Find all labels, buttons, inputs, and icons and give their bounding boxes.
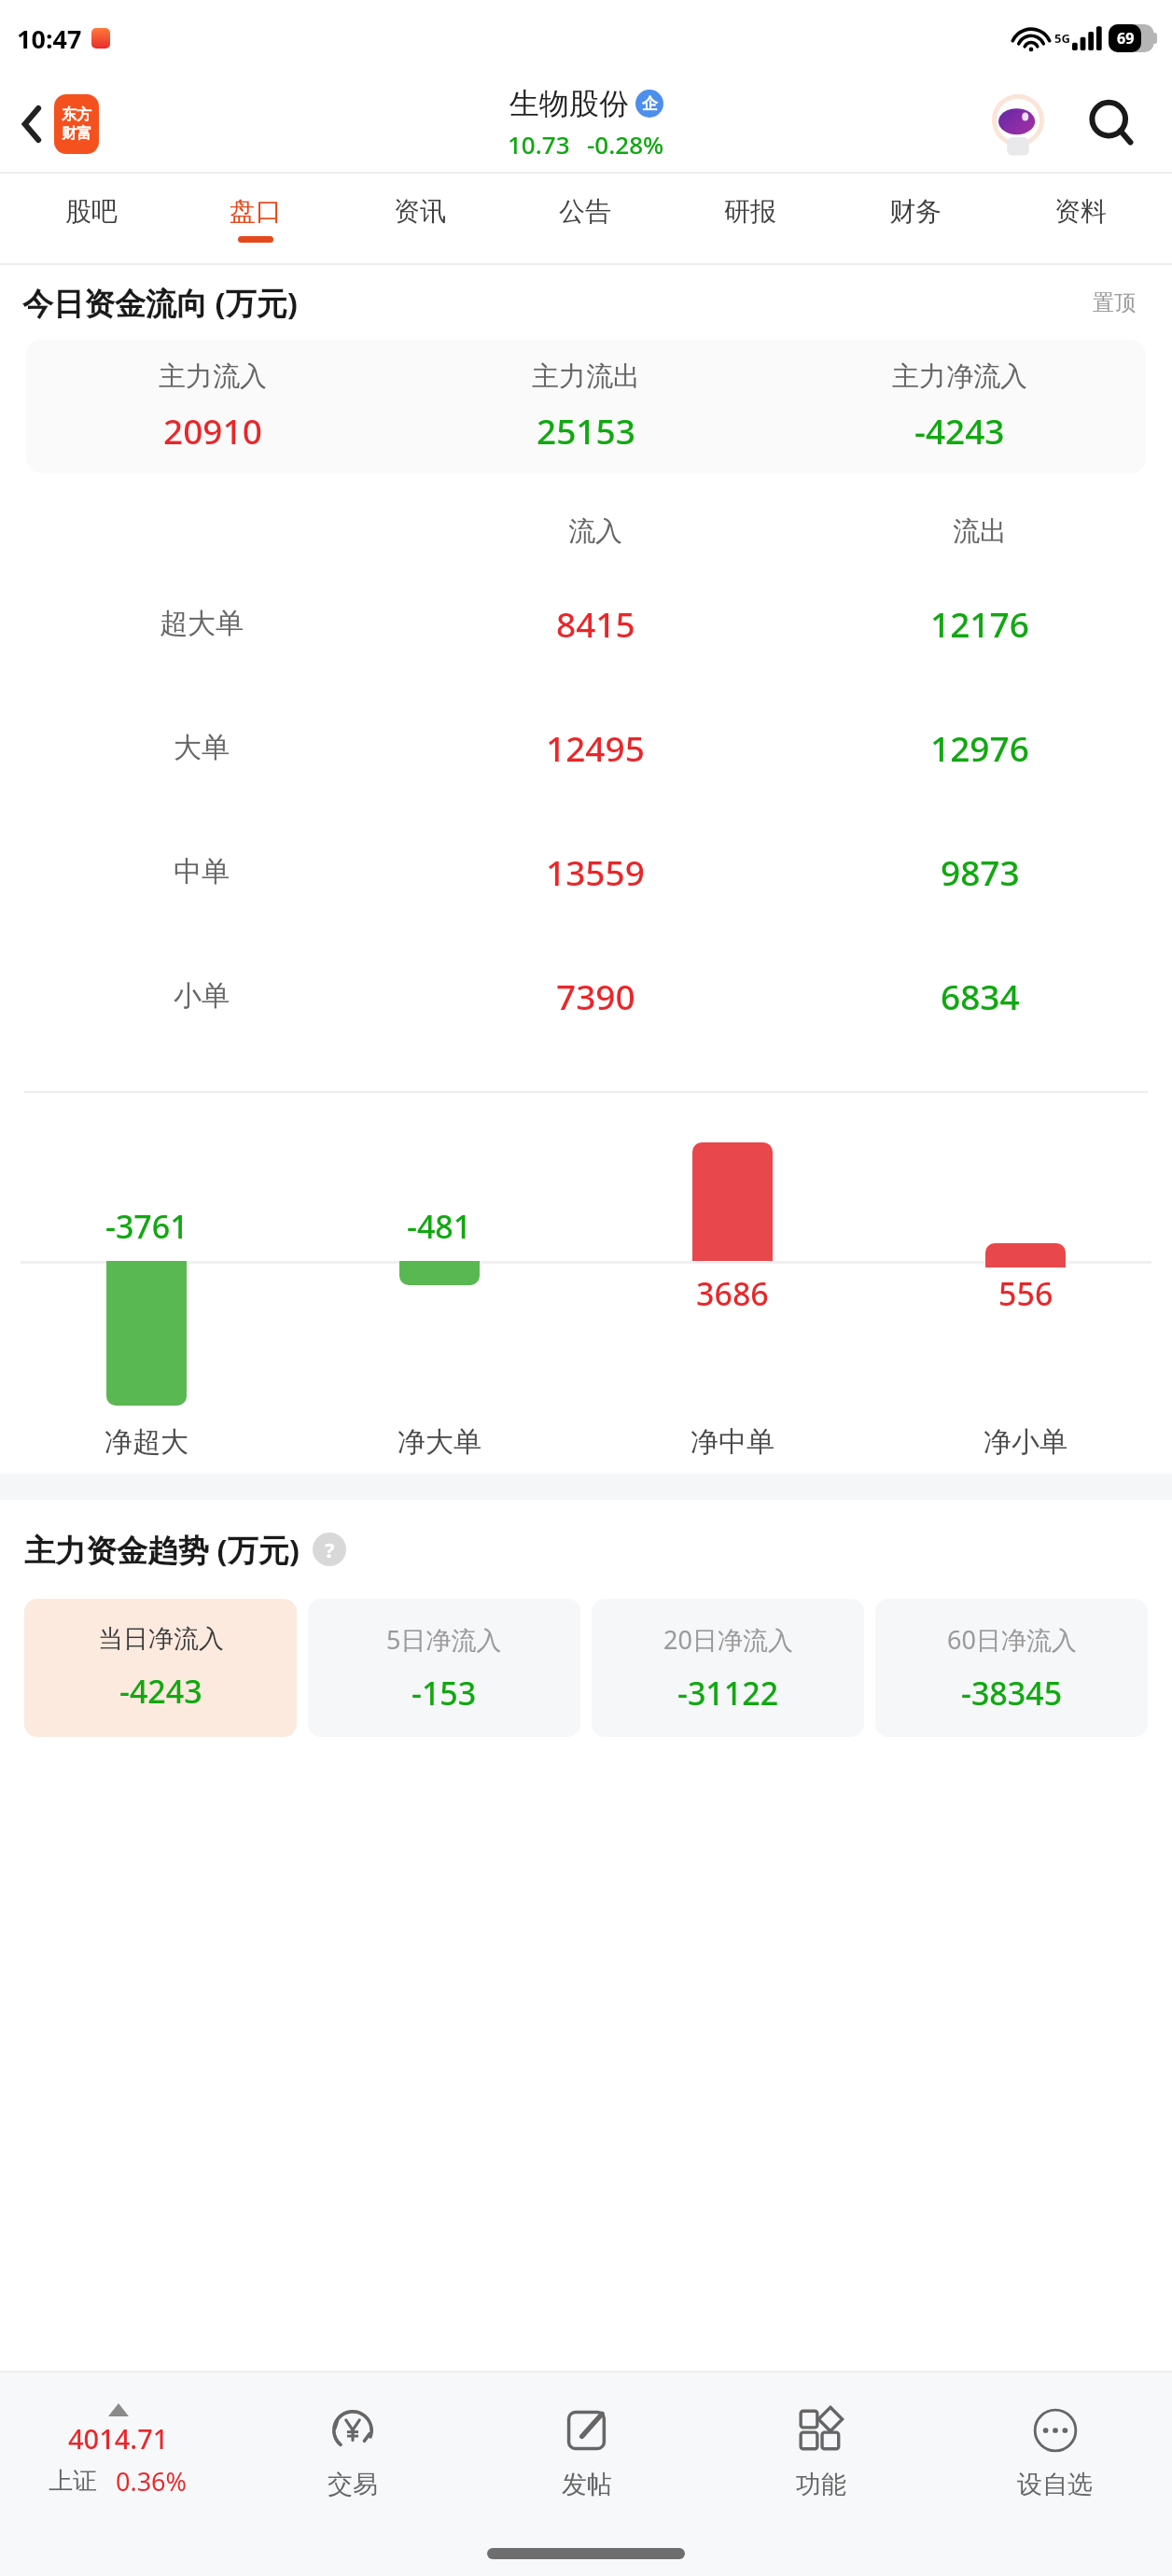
staticText: 3686: [696, 1272, 769, 1315]
staticText: -153: [412, 1672, 477, 1715]
staticText: 财富: [62, 124, 91, 143]
button[interactable]: 当日净流入: [24, 1599, 297, 1737]
staticText: -0.28%: [587, 128, 664, 161]
staticText: -31122: [677, 1672, 779, 1715]
staticText: 超大单: [160, 606, 244, 641]
staticText: 财务: [889, 195, 942, 228]
button[interactable]: Assistant: [984, 90, 1053, 159]
staticText: 9873: [941, 848, 1020, 895]
button[interactable]: 主力流入: [26, 340, 1146, 473]
staticText: 12176: [930, 600, 1029, 647]
button[interactable]: 置顶: [1075, 279, 1153, 326]
button[interactable]: 5日净流入: [308, 1599, 580, 1737]
staticText: 10:47: [17, 21, 82, 56]
button[interactable]: 交易: [235, 2373, 469, 2541]
staticText: 主力净流入: [892, 359, 1027, 394]
staticText: 7390: [556, 973, 635, 1019]
staticText: -38345: [961, 1672, 1063, 1715]
staticText: 5G: [1054, 30, 1070, 47]
button[interactable]: 4014.71: [0, 2373, 235, 2541]
button[interactable]: 20日净流入: [592, 1599, 864, 1737]
staticText: 净中单: [691, 1424, 774, 1460]
staticText: 发帖: [562, 2469, 612, 2500]
staticText: 25153: [537, 407, 635, 454]
staticText: 12976: [930, 724, 1029, 771]
staticText: 12495: [546, 724, 645, 771]
staticText: 69: [1117, 28, 1135, 49]
staticText: 流入: [403, 514, 788, 549]
staticText: 8415: [556, 600, 635, 647]
staticText: 主力资金趋势 (万元): [24, 1529, 300, 1571]
button[interactable]: 盘口: [174, 174, 338, 263]
staticText: 今日资金流向 (万元): [22, 282, 298, 324]
staticText: 公告: [559, 195, 611, 228]
staticText: 主力流入: [159, 359, 267, 394]
button[interactable]: 资料: [998, 174, 1163, 263]
staticText: 研报: [724, 195, 776, 228]
staticText: 当日净流入: [98, 1623, 224, 1655]
staticText: -3761: [105, 1205, 188, 1248]
staticText: 6834: [941, 973, 1020, 1019]
button[interactable]: 大单: [0, 685, 1172, 809]
button[interactable]: 设自选: [938, 2373, 1172, 2541]
staticText: 盘口: [230, 195, 282, 228]
button[interactable]: 超大单: [0, 561, 1172, 685]
staticText: 置顶: [1093, 289, 1136, 316]
staticText: 净大单: [398, 1424, 481, 1460]
staticText: 小单: [174, 978, 230, 1014]
staticText: 5日净流入: [386, 1622, 502, 1657]
staticText: 资料: [1054, 195, 1107, 228]
button[interactable]: 财务: [832, 174, 998, 263]
button[interactable]: Back: [4, 95, 62, 153]
staticText: 生物股份: [509, 85, 629, 122]
staticText: 上证: [49, 2466, 97, 2497]
staticText: -4243: [914, 407, 1005, 454]
button[interactable]: 60日净流入: [875, 1599, 1148, 1737]
staticText: 净超大: [105, 1424, 188, 1460]
button[interactable]: 公告: [502, 174, 667, 263]
button[interactable]: Search: [1075, 87, 1150, 161]
staticText: 10.73: [508, 128, 570, 161]
staticText: 企: [642, 94, 658, 114]
staticText: -481: [407, 1205, 472, 1248]
staticText: 东方: [62, 105, 91, 124]
button[interactable]: 小单: [0, 933, 1172, 1057]
staticText: 556: [998, 1272, 1053, 1315]
button[interactable]: 研报: [667, 174, 832, 263]
staticText: 股吧: [65, 195, 118, 228]
staticText: 设自选: [1017, 2469, 1093, 2500]
staticText: 大单: [174, 730, 230, 765]
staticText: 流出: [788, 514, 1172, 549]
staticText: ?: [325, 1535, 335, 1563]
button[interactable]: Help: [313, 1533, 346, 1566]
button[interactable]: 发帖: [469, 2373, 704, 2541]
staticText: 20日净流入: [663, 1622, 793, 1657]
staticText: 20910: [163, 407, 262, 454]
button[interactable]: 功能: [704, 2373, 938, 2541]
staticText: 主力流出: [532, 359, 640, 394]
staticText: 60日净流入: [947, 1622, 1077, 1657]
button[interactable]: 股吧: [9, 174, 174, 263]
button[interactable]: 资讯: [338, 174, 502, 263]
staticText: 交易: [328, 2469, 378, 2500]
button[interactable]: 东方: [54, 94, 99, 154]
staticText: 净小单: [984, 1424, 1067, 1460]
staticText: 中单: [174, 854, 230, 889]
staticText: 资讯: [394, 195, 446, 228]
staticText: -4243: [119, 1670, 202, 1713]
staticText: 0.36%: [116, 2464, 188, 2499]
staticText: 4014.71: [68, 2420, 169, 2457]
staticText: 功能: [796, 2469, 846, 2500]
button[interactable]: 中单: [0, 809, 1172, 933]
staticText: 13559: [546, 848, 645, 895]
